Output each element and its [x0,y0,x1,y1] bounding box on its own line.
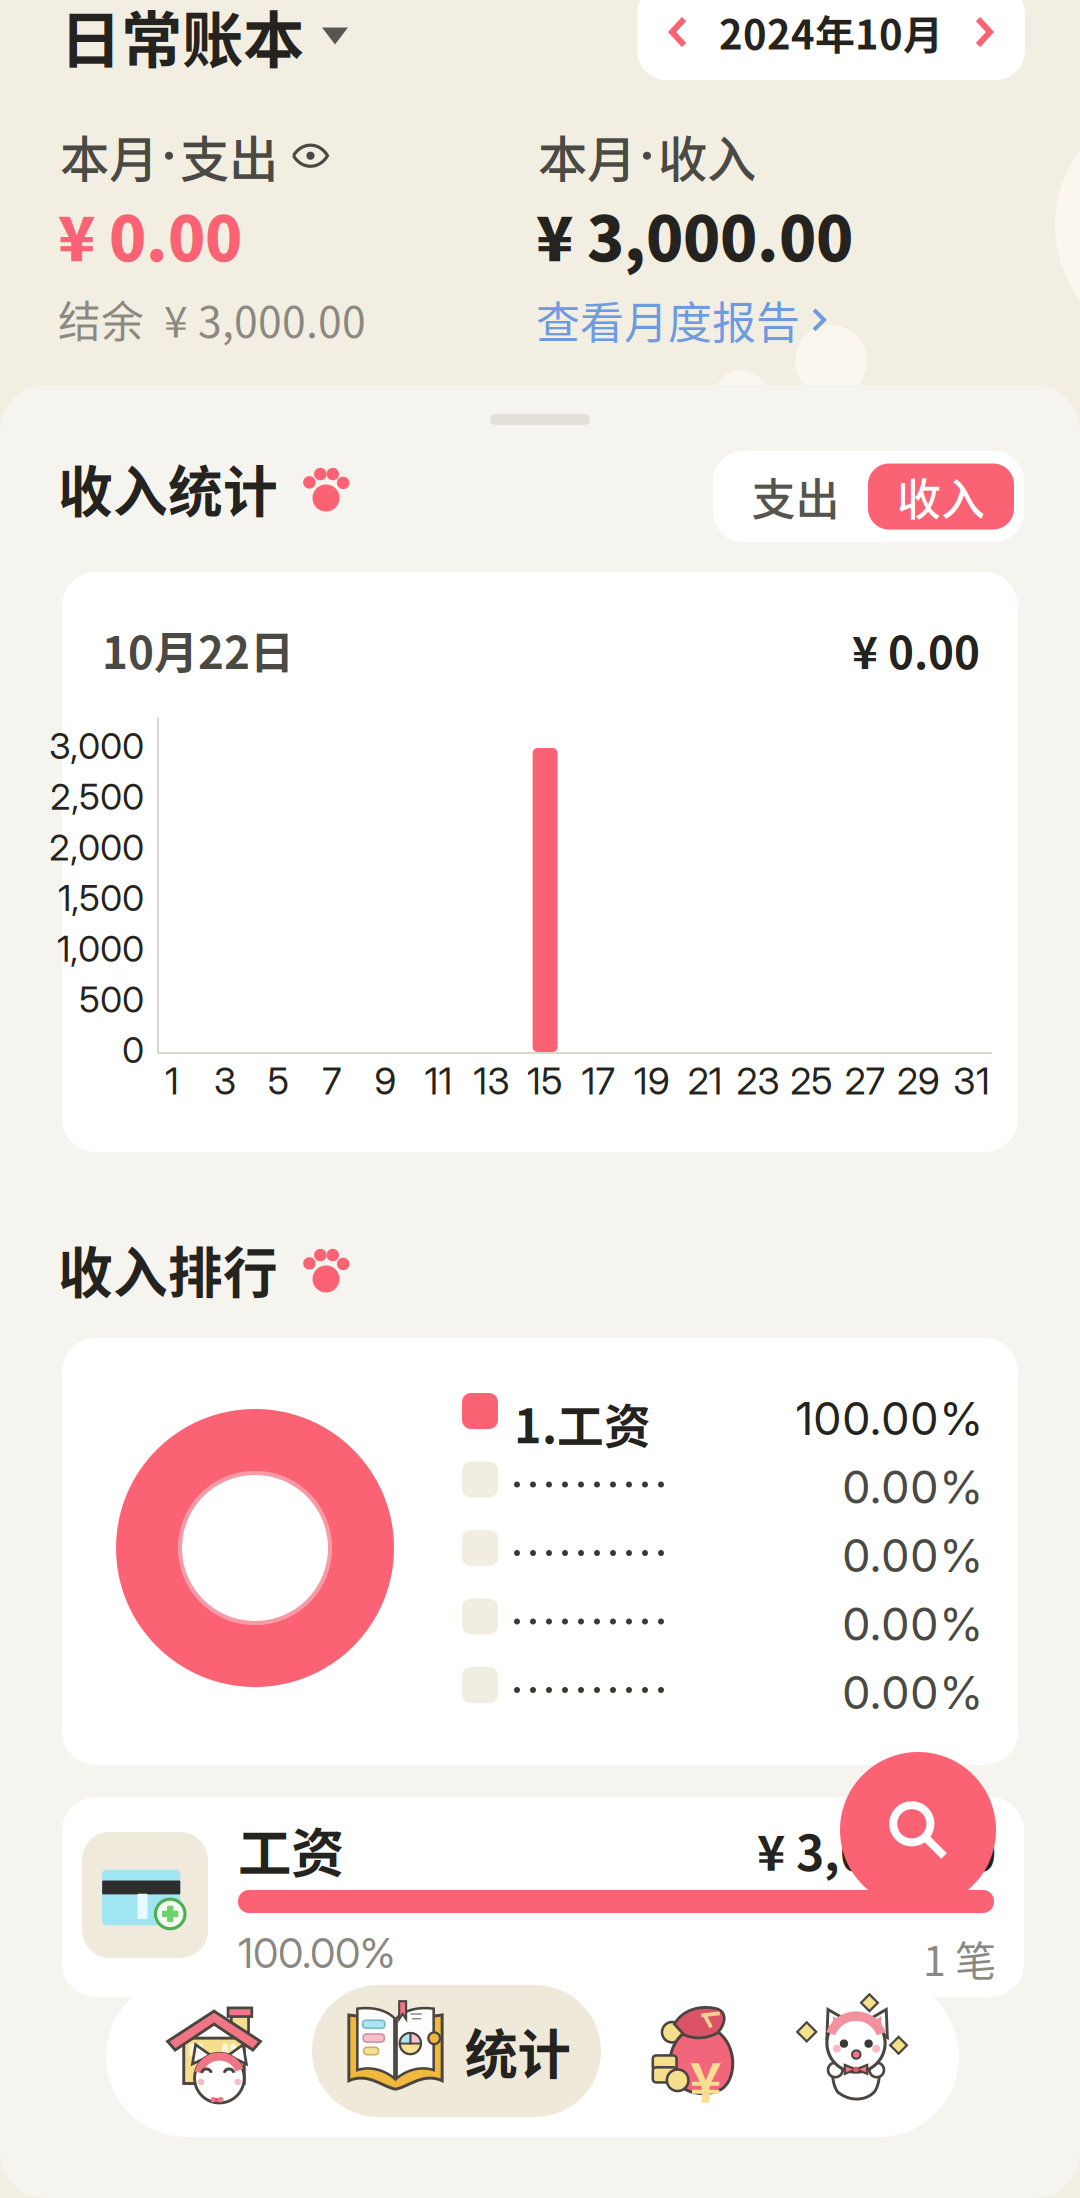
staticText: 2024年10月 [719,3,943,61]
staticText: 13 [473,1058,510,1104]
button[interactable]: Assets [616,1976,776,2137]
staticText: 29 [897,1058,940,1104]
staticText: 0.00% [842,1596,984,1651]
staticText: 31 [953,1058,990,1104]
staticText: 收入 [897,465,985,528]
staticText: 工资 [238,1811,344,1888]
staticText: 1,500 [58,876,144,920]
staticText: 25 [790,1058,833,1104]
staticText: 支出 [180,120,278,191]
button[interactable]: 统计 [312,1985,601,2117]
staticText: 1 [165,1058,179,1104]
staticText: 3,000 [49,724,144,768]
staticText: 7 [322,1058,342,1104]
staticText: 支出 [751,465,839,528]
staticText: ¥ 0.00 [852,618,980,682]
button[interactable]: Home [134,1976,294,2137]
staticText: 查看月度报告 [536,288,800,352]
staticText: 统计 [464,2012,570,2090]
staticText: 1.工资 [514,1389,651,1457]
button[interactable]: Search [840,1752,996,1908]
staticText: 23 [736,1058,780,1104]
staticText: 0.00% [842,1528,984,1583]
button[interactable]: 2024年10月 [637,0,1025,80]
staticText: 0 [122,1028,144,1072]
button[interactable]: 收入 [868,463,1014,529]
staticText: 本月 [60,120,158,191]
staticText: 100.00% [795,1391,984,1446]
staticText: 500 [79,978,144,1021]
button[interactable]: Profile [776,1976,936,2137]
staticText: 15 [527,1058,563,1104]
staticText: 本月 [538,120,636,191]
staticText: ¥ 3,000.00 [757,1815,996,1884]
staticText: 9 [374,1058,396,1104]
staticText: 100.00% [238,1928,395,1978]
staticText: 1 笔 [923,1928,996,1988]
button[interactable]: 查看月度报告 [536,288,826,352]
staticText: 2,500 [50,775,144,818]
staticText: 17 [581,1058,615,1104]
staticText: ¥ 3,000.00 [536,190,853,279]
staticText: 3 [214,1058,237,1104]
staticText: 结余 ¥ 3,000.00 [58,288,366,350]
staticText: 10月22日 [102,618,294,682]
staticText: 27 [844,1058,885,1104]
staticText: ¥ 0.00 [58,190,242,279]
button[interactable]: 支出 [723,463,868,529]
button[interactable]: 日常账本 [60,6,348,66]
staticText: 21 [687,1058,722,1104]
staticText: 2,000 [49,826,144,869]
staticText: 0.00% [842,1459,984,1514]
staticText: 收入 [658,120,756,191]
staticText: 5 [268,1058,290,1104]
staticText: 0.00% [842,1665,984,1720]
staticText: 11 [424,1058,452,1104]
staticText: 收入统计 [58,448,278,527]
staticText: 19 [634,1058,670,1104]
staticText: 1,000 [57,927,144,970]
staticText: ¥ [689,2039,721,2118]
staticText: 日常账本 [60,0,304,80]
staticText: 收入排行 [58,1229,278,1308]
